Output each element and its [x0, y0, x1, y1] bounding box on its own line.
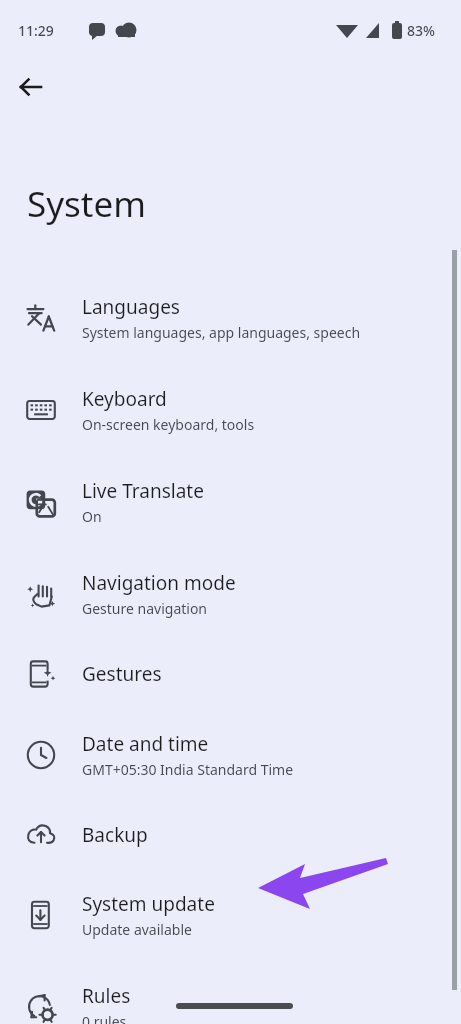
staticText: Gesture navigation — [82, 599, 208, 618]
button[interactable]: Live Translate — [0, 456, 461, 548]
staticText: System languages, app languages, speech — [82, 323, 361, 342]
button[interactable]: System update — [0, 869, 461, 961]
staticText: 0 rules — [82, 1012, 127, 1024]
staticText: Backup — [82, 822, 148, 848]
staticText: GMT+05:30 India Standard Time — [82, 760, 294, 779]
staticText: System update — [82, 891, 215, 917]
button[interactable]: Date and time — [0, 709, 461, 801]
staticText: Keyboard — [82, 386, 167, 412]
button[interactable]: Navigation mode — [0, 548, 461, 640]
staticText: Live Translate — [82, 478, 204, 504]
staticText: Update available — [82, 920, 192, 939]
staticText: Languages — [82, 294, 180, 320]
button[interactable]: Backup — [0, 801, 461, 869]
staticText: System — [27, 180, 146, 228]
button[interactable]: Keyboard — [0, 364, 461, 456]
staticText: 11:29 — [18, 21, 54, 40]
staticText: On-screen keyboard, tools — [82, 415, 255, 434]
staticText: On — [82, 507, 102, 526]
staticText: Gestures — [82, 661, 162, 687]
staticText: Date and time — [82, 731, 209, 757]
staticText: Navigation mode — [82, 570, 236, 596]
button[interactable]: Back — [7, 63, 55, 111]
button[interactable]: Gestures — [0, 640, 461, 708]
staticText: 83% — [407, 21, 435, 40]
button[interactable]: Languages — [0, 272, 461, 364]
staticText: Rules — [82, 983, 131, 1009]
button[interactable]: Rules — [0, 961, 461, 1024]
